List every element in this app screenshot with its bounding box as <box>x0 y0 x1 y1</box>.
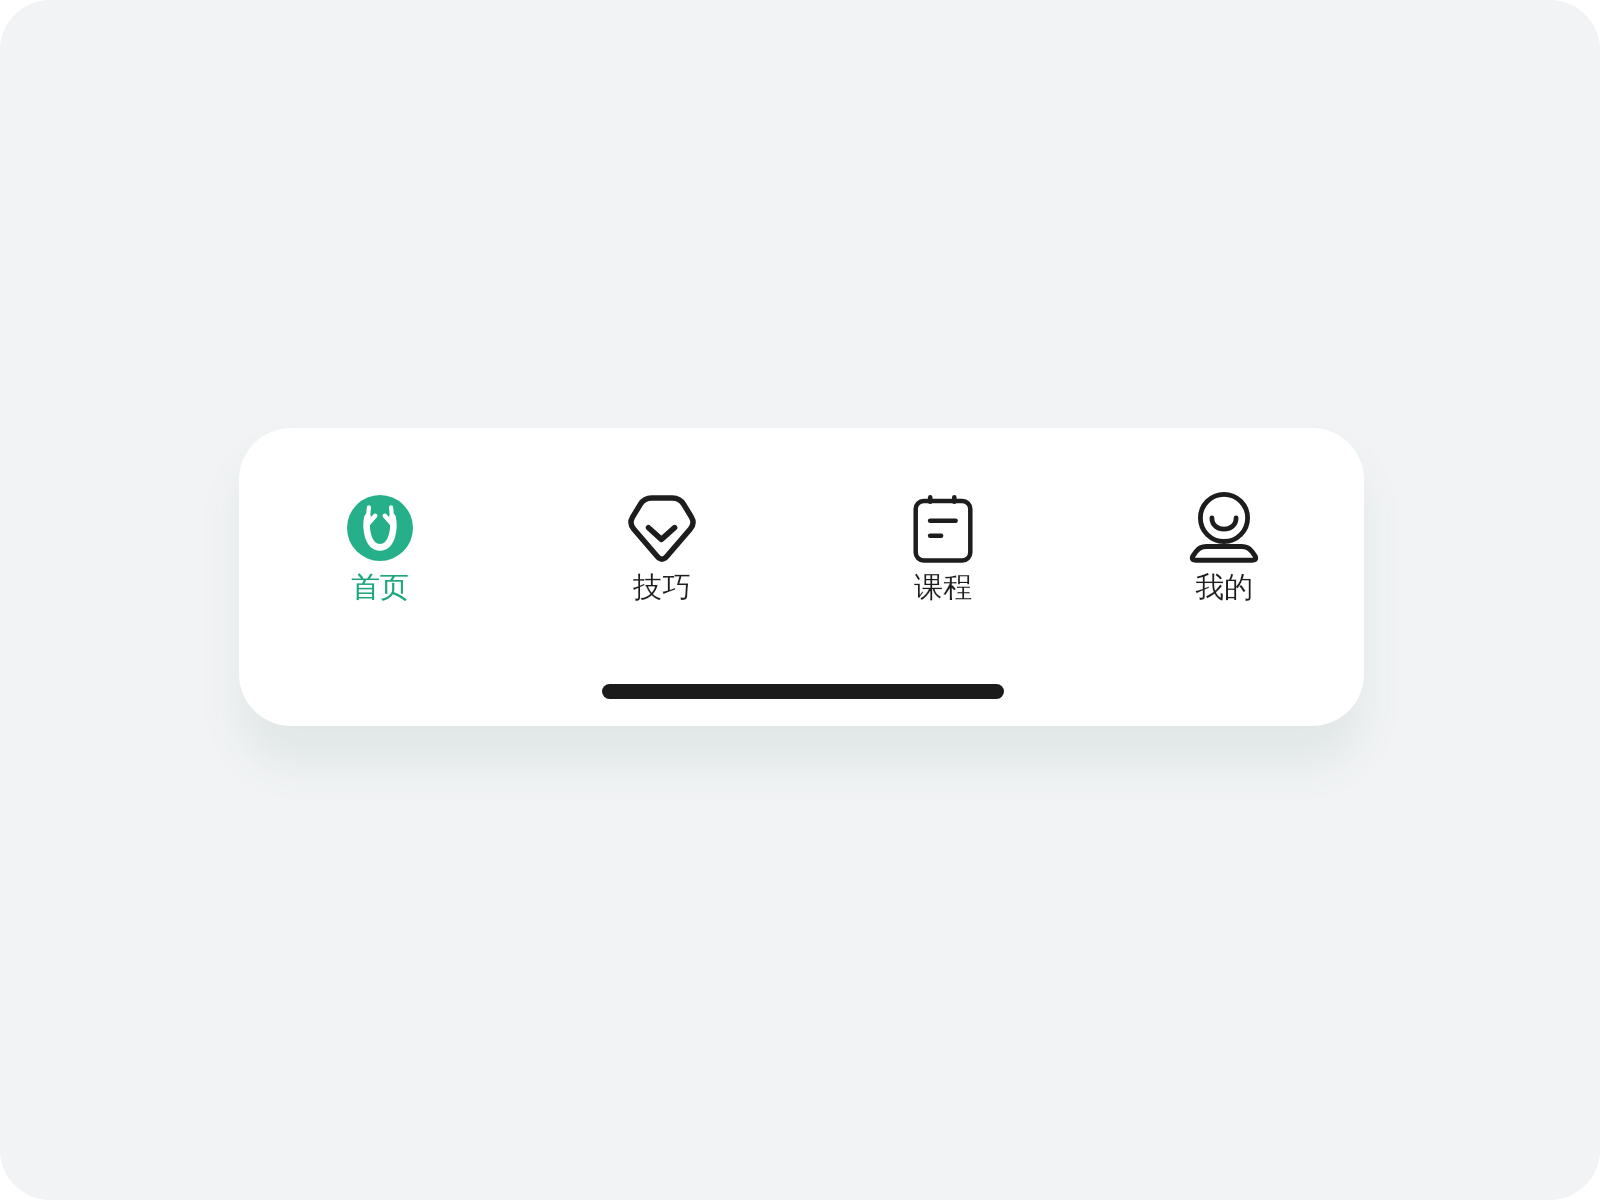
other: 技巧 Tips tab <box>626 492 698 564</box>
other: 首页 Home tab <box>344 492 416 564</box>
other: 我的 Profile tab <box>1188 492 1260 564</box>
staticText: 首页 <box>351 569 409 606</box>
button[interactable]: 课程 Courses tab <box>802 428 1083 726</box>
staticText: 课程 <box>914 569 972 606</box>
button[interactable]: 技巧 Tips tab <box>521 428 802 726</box>
staticText: 技巧 <box>633 569 691 606</box>
button[interactable]: 我的 Profile tab <box>1083 428 1364 726</box>
other: 课程 Courses tab <box>907 492 979 564</box>
button[interactable]: 首页 Home tab <box>239 428 521 726</box>
staticText: 我的 <box>1195 569 1253 606</box>
